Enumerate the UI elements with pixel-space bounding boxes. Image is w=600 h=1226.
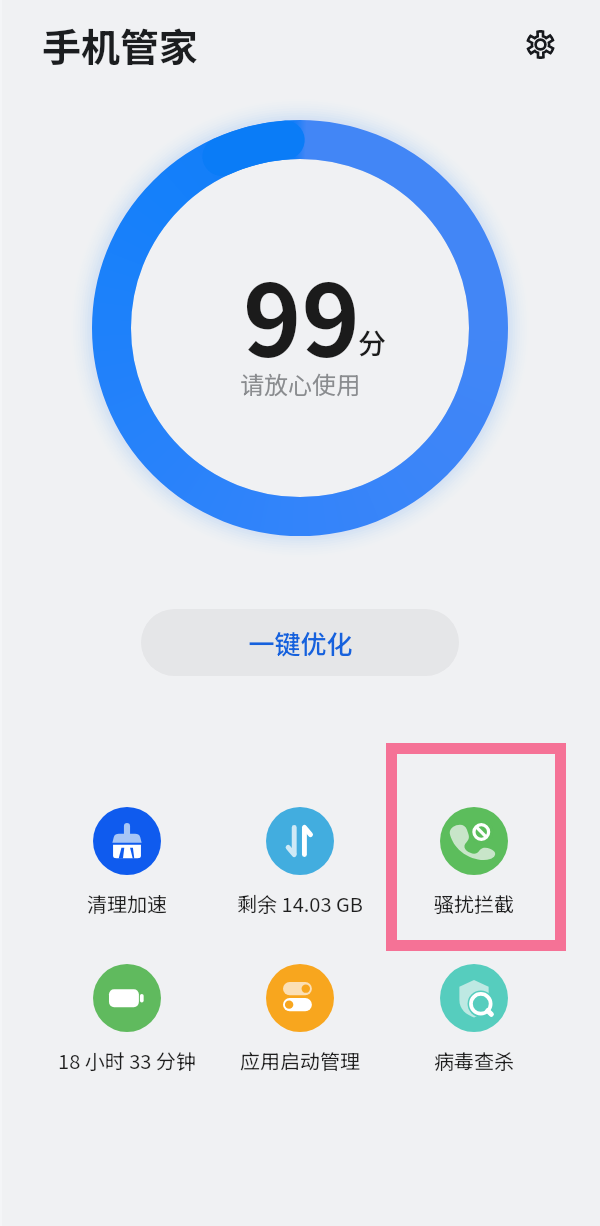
button[interactable]: 一键优化 — [141, 609, 459, 676]
staticText: 应用启动管理 — [214, 1046, 386, 1075]
staticText: 剩余 14.03 GB — [214, 889, 386, 918]
staticText: 99 — [243, 242, 360, 385]
staticText: 手机管家 — [42, 17, 199, 73]
button[interactable]: 应用启动管理 — [214, 964, 386, 1075]
staticText: 病毒查杀 — [388, 1046, 560, 1075]
button[interactable]: 剩余 14.03 GB — [214, 807, 386, 918]
button[interactable]: 骚扰拦截 — [388, 807, 560, 918]
staticText: 一键优化 — [248, 624, 353, 662]
staticText: 请放心使用 — [240, 366, 360, 401]
staticText: 18 小时 33 分钟 — [41, 1046, 213, 1075]
button[interactable]: 18 小时 33 分钟 — [41, 964, 213, 1075]
staticText: 清理加速 — [41, 889, 213, 918]
button[interactable]: 病毒查杀 — [388, 964, 560, 1075]
button[interactable]: 清理加速 — [41, 807, 213, 918]
staticText: 分 — [358, 322, 387, 363]
button[interactable]: Settings — [515, 21, 565, 71]
staticText: 骚扰拦截 — [388, 889, 560, 918]
